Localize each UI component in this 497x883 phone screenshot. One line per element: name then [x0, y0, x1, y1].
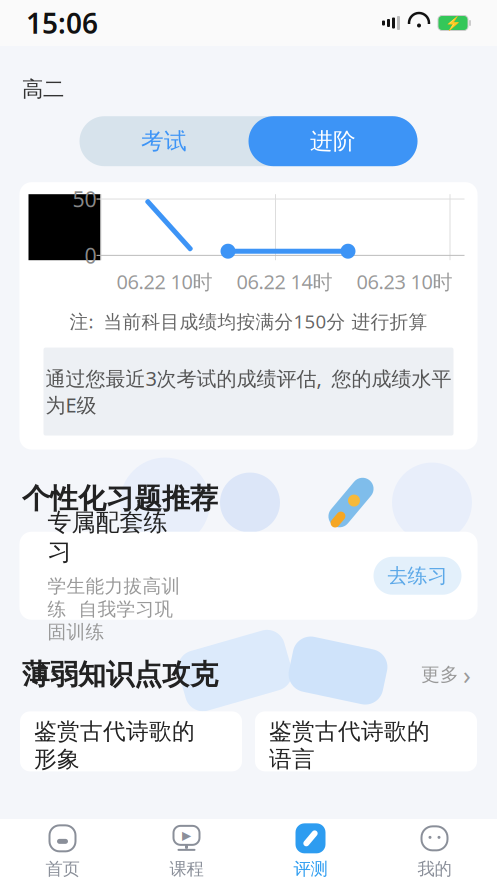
- button[interactable]: 首页: [0, 819, 124, 883]
- button[interactable]: 鉴赏古代诗歌的形象: [20, 711, 242, 771]
- staticText: 06.22 14时: [236, 268, 332, 295]
- staticText: 通过您最近3次考试的成绩评估, 您的成绩水平为E级: [45, 365, 451, 418]
- staticText: ⚡: [444, 15, 461, 31]
- button[interactable]: 专属配套练习: [19, 532, 477, 620]
- staticText: 薄弱知识点攻克: [22, 657, 218, 692]
- staticText: 0: [84, 241, 96, 269]
- staticText: 课程: [169, 858, 203, 880]
- staticText: 注: 当前科目成绩均按满分150分 进行折算: [69, 309, 427, 334]
- staticText: 去练习: [387, 563, 447, 588]
- staticText: ›: [463, 658, 471, 691]
- staticText: 更多: [421, 663, 459, 686]
- button[interactable]: 我的: [372, 819, 496, 883]
- button[interactable]: 评测: [248, 819, 372, 883]
- staticText: 首页: [45, 858, 79, 880]
- staticText: 学生能力拔高训练 自我学习巩固训练: [47, 575, 180, 644]
- button[interactable]: 更多: [417, 654, 475, 695]
- staticText: 06.23 10时: [356, 268, 452, 295]
- staticText: 评测: [293, 858, 327, 880]
- staticText: 我的: [417, 858, 451, 880]
- button[interactable]: 进阶: [248, 116, 417, 166]
- staticText: 鉴赏古代诗歌的形象: [34, 717, 195, 773]
- staticText: 06.22 10时: [116, 268, 212, 295]
- staticText: 个性化习题推荐: [22, 481, 218, 516]
- staticText: ▶: [182, 828, 191, 842]
- staticText: 15:06: [26, 4, 98, 42]
- staticText: 进阶: [310, 127, 356, 155]
- staticText: 专属配套练习: [47, 508, 167, 567]
- staticText: 50: [72, 185, 96, 213]
- staticText: 鉴赏古代诗歌的语言: [269, 717, 430, 773]
- button[interactable]: ▶: [124, 819, 248, 883]
- staticText: 高二: [22, 76, 64, 102]
- staticText: 考试: [141, 127, 187, 155]
- button[interactable]: 鉴赏古代诗歌的语言: [255, 711, 477, 771]
- button[interactable]: 考试: [79, 116, 248, 166]
